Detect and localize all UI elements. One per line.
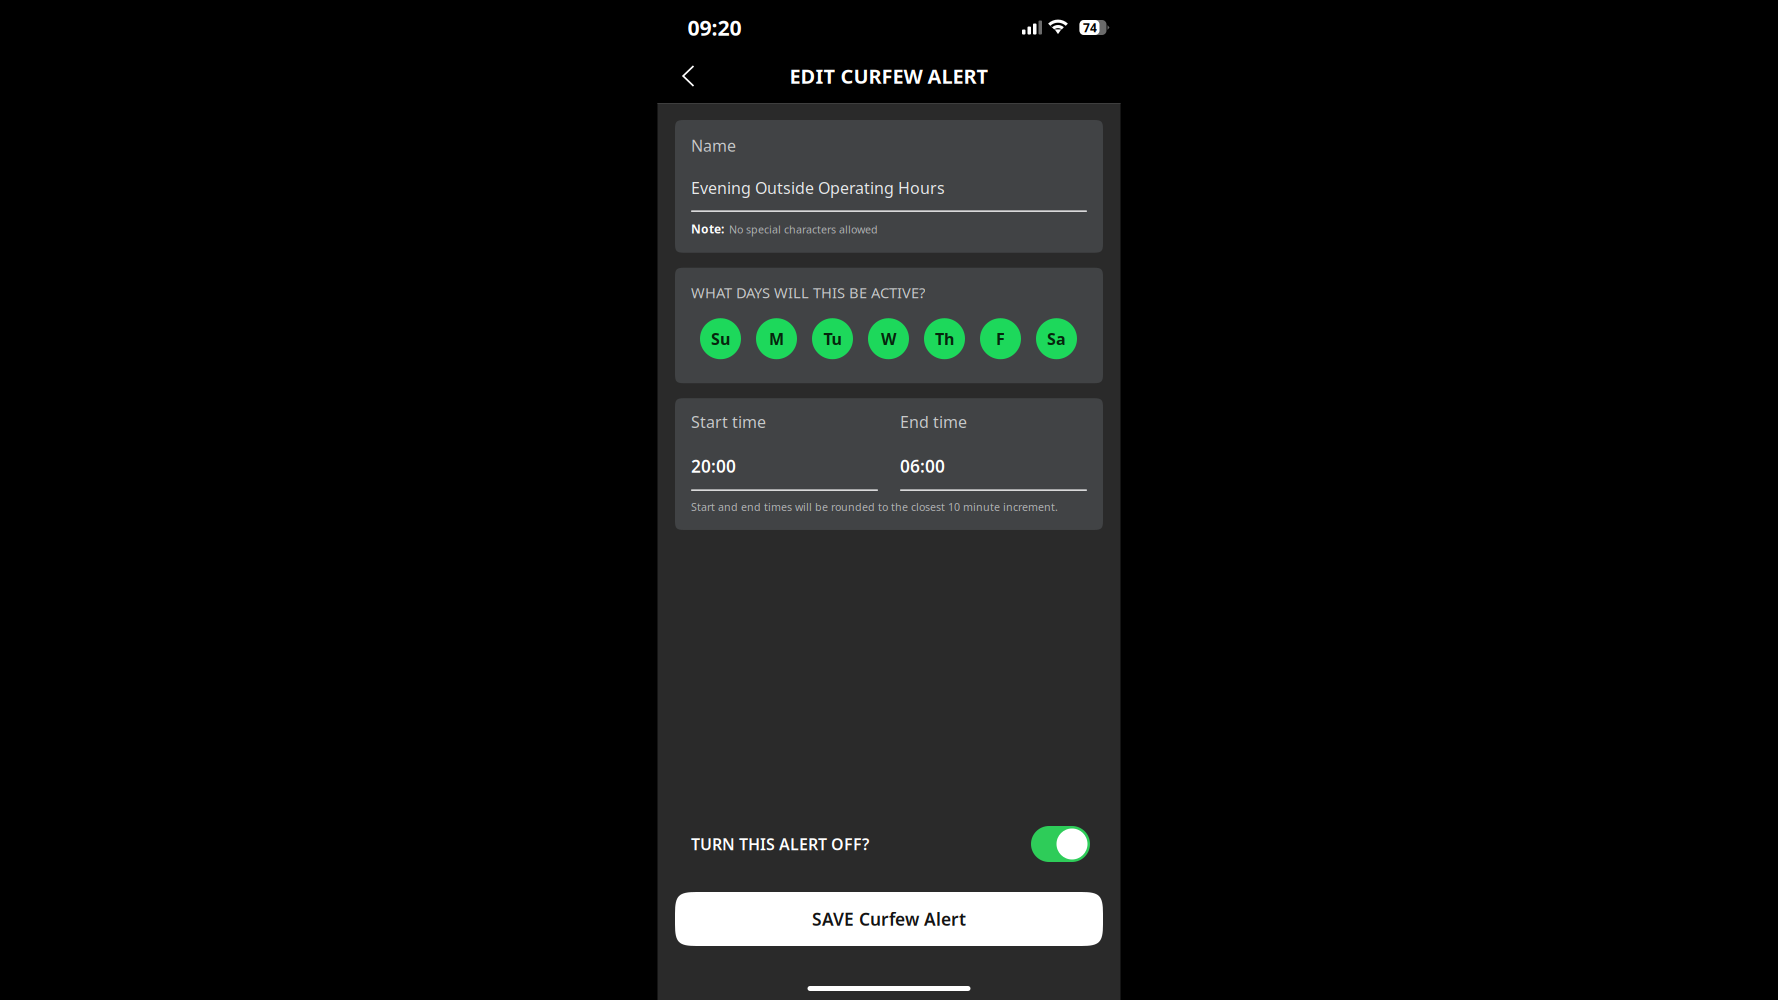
staticText: Start time — [691, 411, 766, 432]
button[interactable]: M — [756, 318, 797, 359]
staticText: Note: — [691, 221, 724, 237]
button[interactable]: Back — [657, 51, 708, 101]
button[interactable]: W — [868, 318, 909, 359]
staticText: Evening Outside Operating Hours — [691, 177, 945, 198]
staticText: Start and end times will be rounded to t… — [691, 500, 1058, 514]
staticText: TURN THIS ALERT OFF? — [691, 833, 869, 855]
staticText: M — [769, 328, 784, 349]
staticText: F — [996, 328, 1005, 349]
staticText: Name — [691, 135, 736, 156]
button[interactable]: Sa — [1036, 318, 1077, 359]
staticText: 74 — [1083, 19, 1097, 35]
button[interactable]: Turn this alert off — [1031, 826, 1090, 862]
button[interactable]: SAVE Curfew Alert — [657, 892, 1120, 946]
staticText: 20:00 — [691, 454, 736, 477]
button[interactable]: F — [980, 318, 1021, 359]
staticText: No special characters allowed — [729, 222, 878, 236]
staticText: Tu — [823, 328, 841, 349]
staticText: W — [881, 328, 896, 349]
staticText: End time — [900, 411, 967, 432]
staticText: 09:20 — [687, 13, 741, 42]
staticText: 06:00 — [900, 454, 945, 477]
button[interactable]: Tu — [812, 318, 853, 359]
staticText: SAVE Curfew Alert — [812, 907, 966, 930]
staticText: WHAT DAYS WILL THIS BE ACTIVE? — [691, 283, 925, 302]
staticText: Sa — [1047, 328, 1066, 349]
button[interactable]: Su — [700, 318, 741, 359]
staticText: Th — [935, 328, 954, 349]
button[interactable]: Th — [924, 318, 965, 359]
staticText: Su — [711, 328, 730, 349]
staticText: EDIT CURFEW ALERT — [789, 63, 988, 89]
